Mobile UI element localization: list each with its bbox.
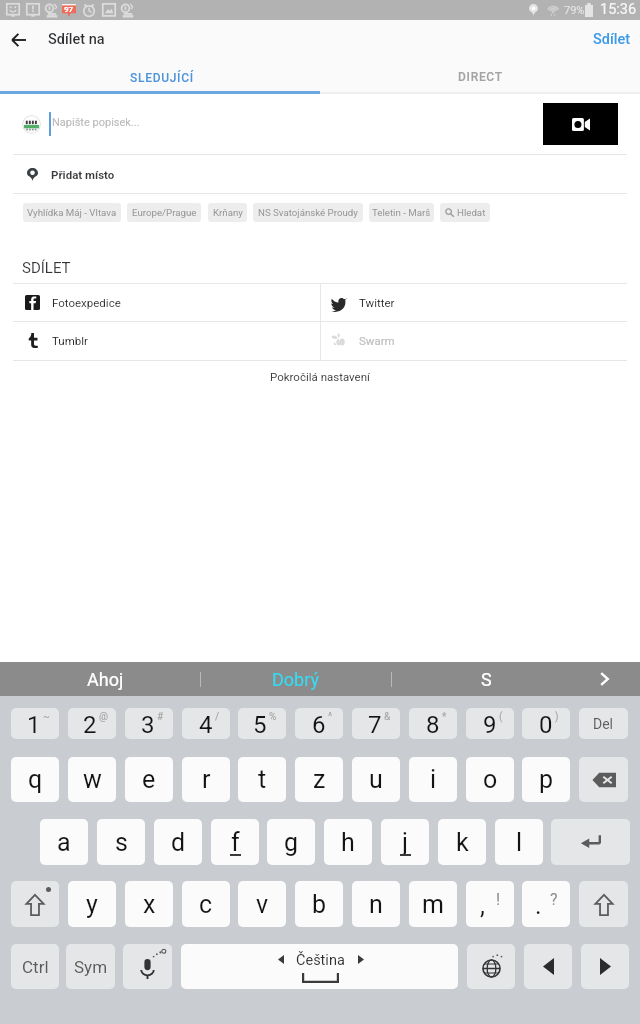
button[interactable]: NS Svatojánské Proudy <box>253 203 363 222</box>
button[interactable]: Shift <box>579 881 628 927</box>
staticText: ^ <box>328 711 333 723</box>
button[interactable]: Přidat místo <box>0 155 640 193</box>
button[interactable]: y <box>68 881 116 927</box>
button[interactable]: x <box>125 881 173 927</box>
button[interactable]: Sdílet <box>573 20 640 59</box>
button[interactable]: 8 <box>409 708 457 739</box>
staticText: Dobrý <box>272 669 319 690</box>
button[interactable]: 6 <box>295 708 343 739</box>
button[interactable]: 1 <box>11 708 59 739</box>
button[interactable]: 5 <box>238 708 286 739</box>
button[interactable]: Dobrý <box>200 662 391 696</box>
staticText: ! <box>496 890 501 909</box>
staticText: SDÍLET <box>22 259 71 277</box>
button[interactable]: Teletin - Marš <box>369 203 434 222</box>
button[interactable]: Voice input <box>123 944 172 989</box>
button[interactable]: 2 <box>68 708 116 739</box>
button[interactable]: Del <box>579 708 628 739</box>
button[interactable]: Hledat <box>440 203 490 222</box>
button[interactable]: m <box>409 881 457 927</box>
staticText: Ctrl <box>22 957 49 977</box>
button[interactable]: l <box>495 819 543 865</box>
staticText: t <box>258 765 267 794</box>
staticText: Teletin - Marš <box>372 207 431 218</box>
button[interactable]: Shift <box>11 881 59 927</box>
button[interactable]: 4 <box>182 708 230 739</box>
button[interactable]: Fotoexpedice <box>0 284 320 322</box>
button[interactable]: Selected media <box>543 103 618 145</box>
staticText: z <box>313 765 326 794</box>
staticText: ) <box>555 711 559 723</box>
button[interactable]: , <box>466 881 514 927</box>
button[interactable]: More suggestions <box>582 662 640 696</box>
button[interactable]: b <box>295 881 343 927</box>
staticText: S <box>481 669 492 690</box>
button[interactable]: Change keyboard <box>467 944 515 989</box>
button[interactable]: o <box>466 757 514 802</box>
staticText: w <box>83 765 102 794</box>
staticText: Krňany <box>213 207 243 218</box>
button[interactable]: f <box>211 819 259 865</box>
button[interactable]: 9 <box>466 708 514 739</box>
button[interactable]: h <box>324 819 372 865</box>
button[interactable]: Twitter <box>320 284 640 322</box>
button[interactable]: Swarm <box>320 322 640 360</box>
button[interactable]: Space <box>181 944 458 989</box>
button[interactable]: s <box>97 819 145 865</box>
staticText: e <box>142 765 156 794</box>
button[interactable]: d <box>154 819 202 865</box>
staticText: Del <box>593 716 614 732</box>
button[interactable]: n <box>352 881 400 927</box>
button[interactable]: j <box>381 819 429 865</box>
button[interactable]: Move cursor right <box>581 944 629 989</box>
staticText: l <box>516 828 523 857</box>
button[interactable]: Enter <box>551 819 630 865</box>
staticText: 4 <box>199 711 213 739</box>
button[interactable]: 3 <box>125 708 173 739</box>
button[interactable]: Krňany <box>208 203 247 222</box>
staticText: Ahoj <box>87 669 124 690</box>
button[interactable]: 0 <box>522 708 570 739</box>
button[interactable]: Back <box>0 20 40 59</box>
staticText: # <box>157 711 164 723</box>
staticText: @ <box>99 711 108 723</box>
button[interactable]: . <box>522 881 570 927</box>
button[interactable]: Tumblr <box>0 322 320 360</box>
button[interactable]: c <box>182 881 230 927</box>
button[interactable]: q <box>11 757 59 802</box>
button[interactable]: r <box>182 757 230 802</box>
staticText: n <box>369 890 383 919</box>
button[interactable]: v <box>238 881 286 927</box>
staticText: % <box>269 711 277 723</box>
button[interactable]: g <box>267 819 315 865</box>
button[interactable]: Sym <box>66 944 115 989</box>
staticText: 5 <box>253 711 267 739</box>
button[interactable]: DIRECT <box>320 59 640 94</box>
button[interactable]: Backspace <box>579 757 628 802</box>
button[interactable]: i <box>409 757 457 802</box>
button[interactable]: SLEDUJÍCÍ <box>0 59 320 94</box>
button[interactable]: w <box>68 757 116 802</box>
button[interactable]: e <box>125 757 173 802</box>
button[interactable]: Ctrl <box>11 944 59 989</box>
button[interactable]: k <box>438 819 486 865</box>
button[interactable]: 7 <box>352 708 400 739</box>
button[interactable]: a <box>40 819 88 865</box>
staticText: r <box>202 765 211 794</box>
button[interactable]: z <box>295 757 343 802</box>
staticText: c <box>199 890 213 919</box>
button[interactable]: Europe/Prague <box>127 203 201 222</box>
button[interactable]: Move cursor left <box>524 944 572 989</box>
staticText: ~ <box>43 711 50 723</box>
button[interactable]: Vyhlídka Máj - Vltava <box>23 203 121 222</box>
button[interactable]: p <box>522 757 570 802</box>
staticText: SLEDUJÍCÍ <box>130 71 194 85</box>
button[interactable]: Ahoj <box>10 662 200 696</box>
button[interactable]: Pokročilá nastavení <box>0 362 640 390</box>
staticText: a <box>57 828 71 857</box>
staticText: 0 <box>539 711 553 739</box>
button[interactable]: u <box>352 757 400 802</box>
button[interactable]: t <box>238 757 286 802</box>
staticText: k <box>456 828 469 857</box>
button[interactable]: S <box>391 662 582 696</box>
